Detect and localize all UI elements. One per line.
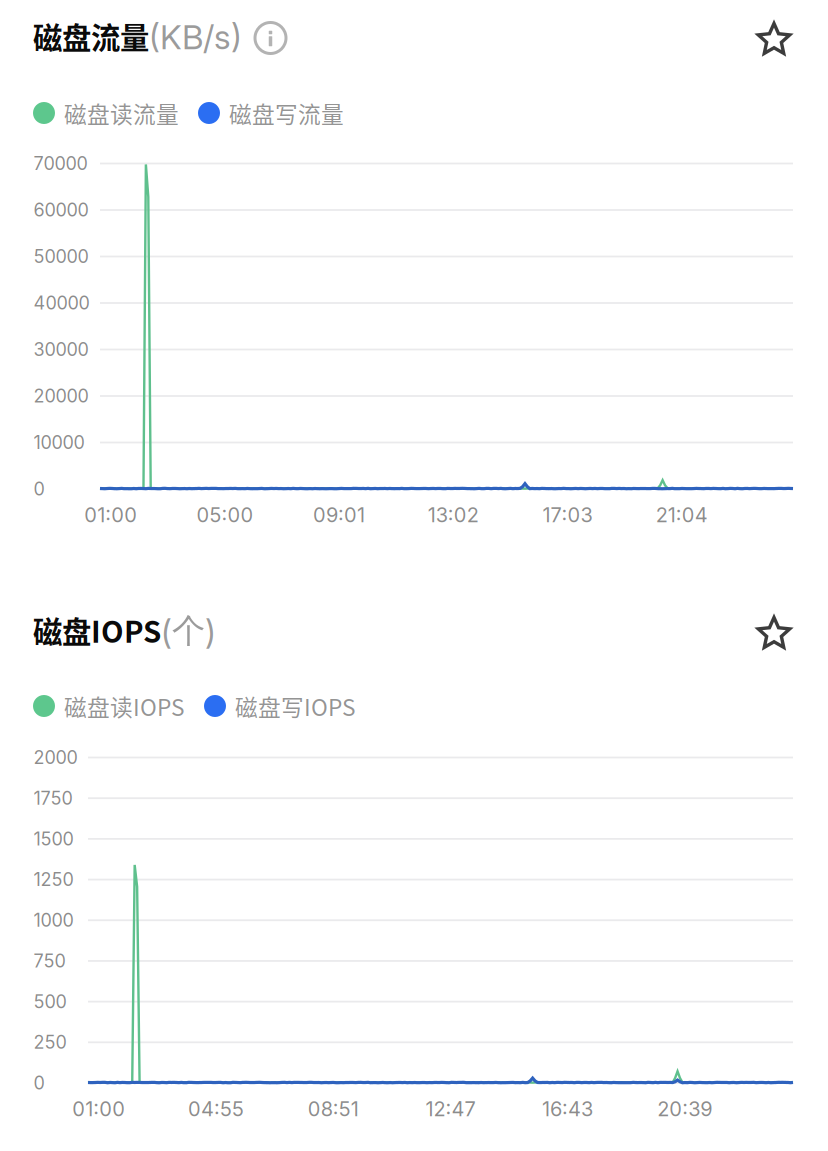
- button[interactable]: 收藏: [743, 601, 795, 658]
- staticText: 2000: [33, 747, 77, 768]
- staticText: 磁盘读流量: [64, 97, 179, 129]
- staticText: 磁盘读IOPS: [64, 690, 185, 722]
- staticText: 50000: [33, 246, 88, 267]
- staticText: 1500: [33, 828, 73, 850]
- button[interactable]: 收藏: [743, 7, 795, 64]
- staticText: 16:43: [542, 1097, 593, 1121]
- staticText: 0: [33, 1072, 44, 1094]
- staticText: 05:00: [196, 503, 253, 527]
- staticText: 500: [33, 991, 66, 1012]
- staticText: 30000: [33, 339, 88, 360]
- staticText: (个): [161, 610, 216, 652]
- staticText: 20000: [33, 385, 88, 407]
- staticText: 13:02: [428, 503, 479, 527]
- staticText: 01:00: [84, 503, 137, 527]
- staticText: 09:01: [313, 503, 365, 527]
- staticText: 1750: [33, 787, 72, 809]
- staticText: 17:03: [542, 503, 592, 527]
- staticText: 10000: [33, 432, 84, 453]
- staticText: 12:47: [425, 1097, 475, 1121]
- staticText: (KB/s): [149, 17, 242, 57]
- staticText: 21:04: [656, 503, 708, 527]
- staticText: 磁盘写流量: [229, 97, 344, 129]
- staticText: 40000: [33, 292, 89, 314]
- staticText: 70000: [33, 153, 87, 174]
- staticText: 08:51: [308, 1097, 359, 1121]
- staticText: 750: [33, 950, 65, 972]
- staticText: 磁盘写IOPS: [235, 690, 356, 722]
- staticText: 60000: [33, 199, 88, 221]
- staticText: 1250: [33, 869, 73, 890]
- staticText: 04:55: [188, 1097, 244, 1121]
- staticText: 250: [33, 1031, 66, 1053]
- staticText: 0: [33, 478, 44, 500]
- staticText: 01:00: [72, 1097, 125, 1121]
- staticText: 磁盘IOPS: [33, 609, 161, 651]
- staticText: 1000: [33, 909, 73, 931]
- staticText: 20:39: [657, 1097, 712, 1121]
- staticText: 磁盘流量: [33, 15, 149, 57]
